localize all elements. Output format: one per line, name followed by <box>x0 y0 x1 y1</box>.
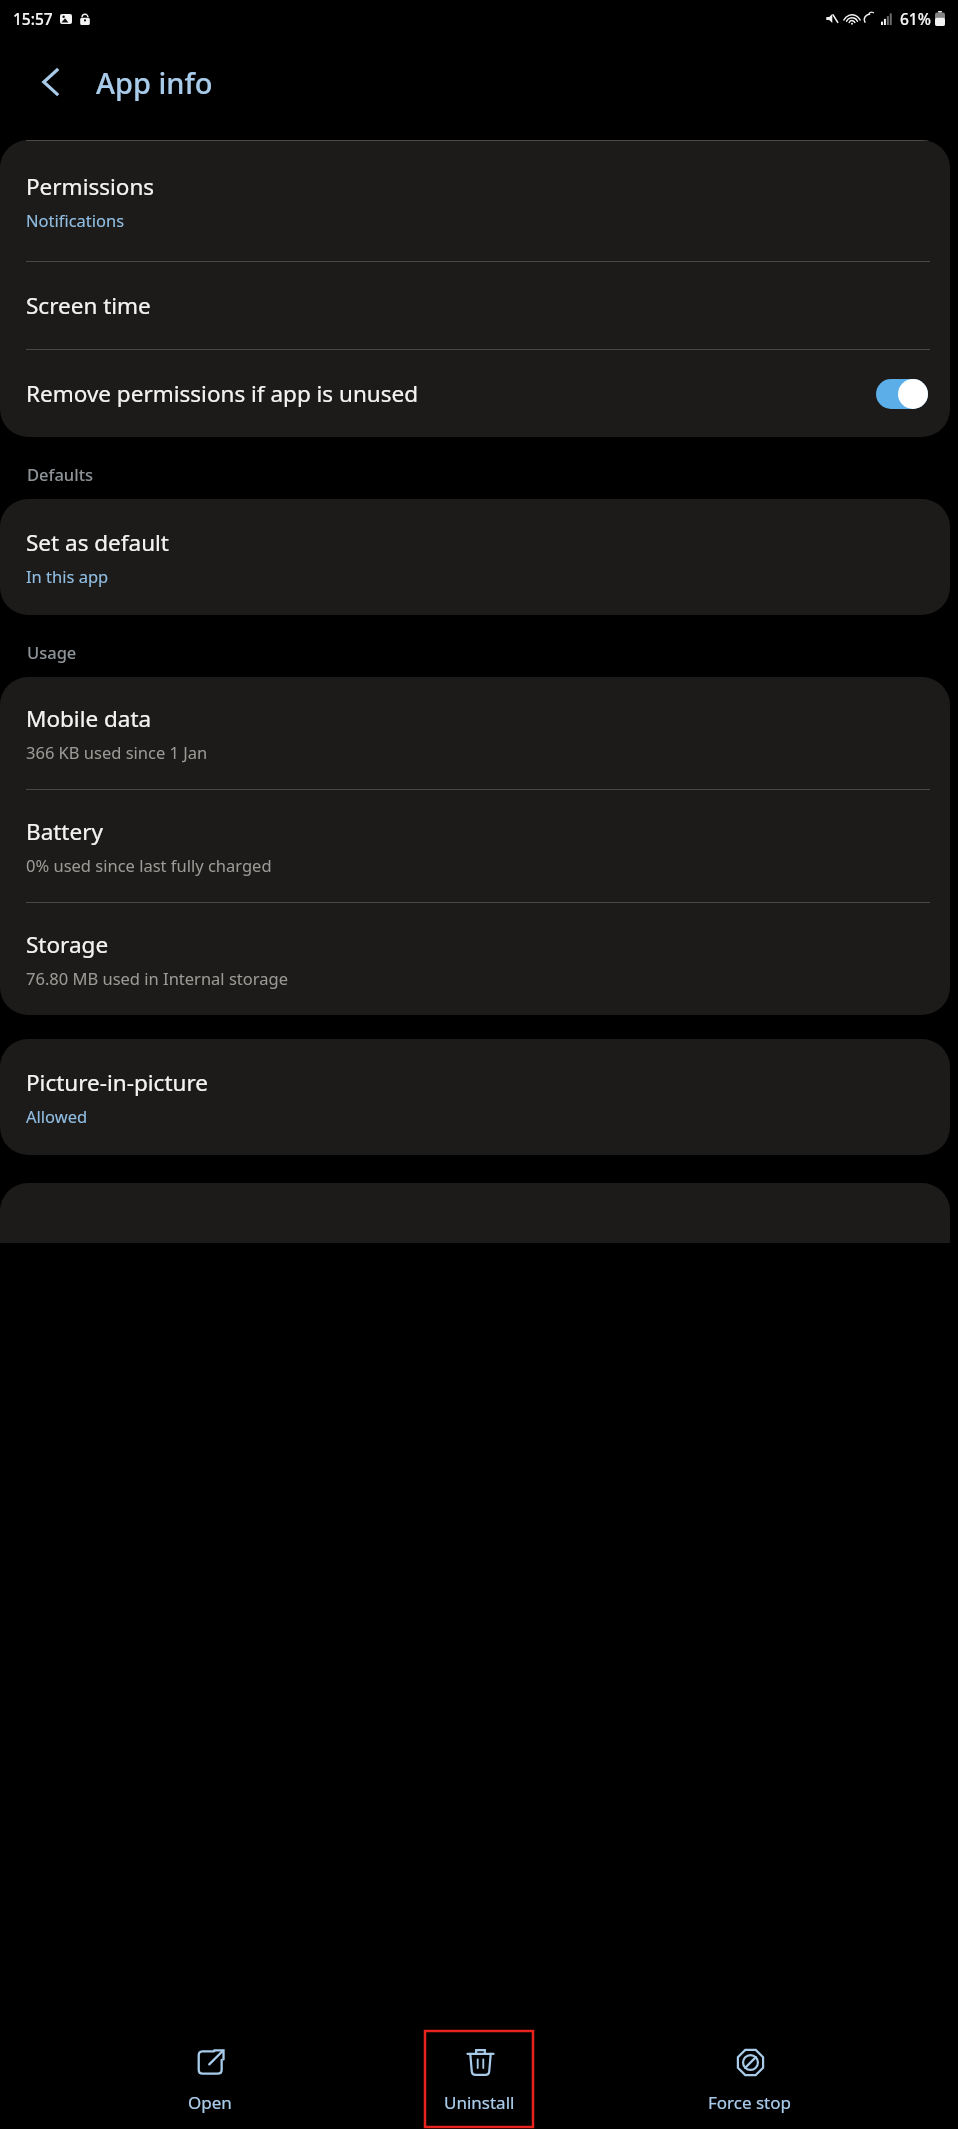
button[interactable]: Force stop <box>689 2029 809 2129</box>
button[interactable]: Screen time <box>0 262 950 349</box>
staticText: 76.80 MB used in Internal storage <box>26 967 288 989</box>
staticText: Notifications <box>26 209 125 231</box>
button[interactable]: Storage <box>0 903 950 1015</box>
staticText: Defaults <box>27 463 93 485</box>
staticText: Uninstall <box>444 2091 515 2114</box>
button[interactable]: Set as default <box>0 499 950 615</box>
staticText: 61% <box>900 8 931 29</box>
button[interactable]: Remove permissions if app is unused <box>0 350 950 437</box>
staticText: 15:57 <box>13 8 53 29</box>
button[interactable]: Open <box>150 2029 270 2129</box>
staticText: Mobile data <box>26 703 152 734</box>
other: Open <box>195 2047 226 2078</box>
staticText: Remove permissions if app is unused <box>26 378 419 409</box>
staticText: Usage <box>27 641 77 663</box>
staticText: App info <box>96 63 213 102</box>
staticText: 366 KB used since 1 Jan <box>26 741 208 763</box>
staticText: Set as default <box>26 527 169 558</box>
staticText: 0% used since last fully charged <box>26 854 272 876</box>
other: Force stop <box>735 2047 766 2078</box>
button[interactable]: Back <box>20 51 82 113</box>
staticText: Battery <box>26 816 103 847</box>
staticText: Picture-in-picture <box>26 1067 208 1098</box>
button[interactable]: Mobile data <box>0 677 950 789</box>
other: Uninstall <box>465 2047 496 2078</box>
button[interactable]: Battery <box>0 790 950 902</box>
staticText: Allowed <box>26 1105 88 1127</box>
staticText: In this app <box>26 565 109 587</box>
button[interactable]: Uninstall <box>419 2029 539 2129</box>
staticText: Permissions <box>26 171 155 202</box>
staticText: Storage <box>26 929 109 960</box>
button[interactable]: Picture-in-picture <box>0 1039 950 1155</box>
button[interactable]: Permissions <box>0 141 950 261</box>
staticText: Force stop <box>708 2091 791 2114</box>
staticText: Screen time <box>26 290 151 321</box>
staticText: Open <box>188 2091 232 2114</box>
